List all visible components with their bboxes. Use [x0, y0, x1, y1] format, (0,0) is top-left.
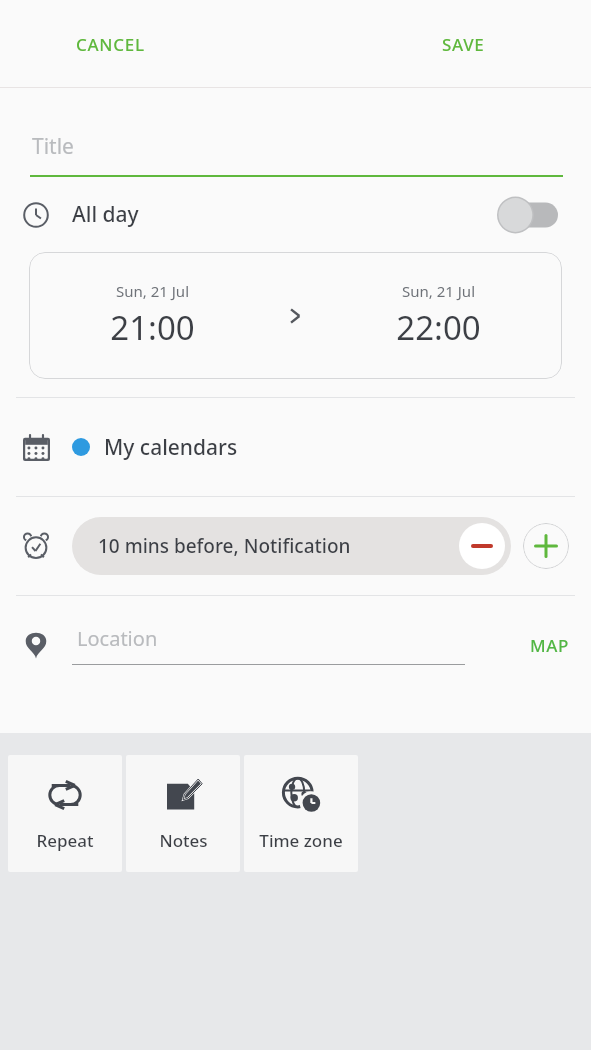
- staticText: Repeat: [36, 829, 94, 852]
- button[interactable]: Location: [72, 625, 465, 665]
- button[interactable]: All day: [0, 177, 591, 252]
- staticText: Title: [32, 132, 74, 161]
- staticText: Sun, 21 Jul: [402, 281, 475, 301]
- staticText: All day: [72, 200, 139, 229]
- staticText: Sun, 21 Jul: [116, 281, 189, 301]
- staticText: Notes: [159, 829, 208, 852]
- staticText: Location: [77, 625, 158, 652]
- button[interactable]: SAVE: [428, 25, 499, 64]
- button[interactable]: My calendars: [0, 398, 591, 496]
- staticText: MAP: [530, 634, 569, 657]
- button[interactable]: All day toggle: [496, 195, 558, 235]
- staticText: CANCEL: [76, 33, 145, 56]
- staticText: 10 mins before, Notification: [98, 533, 351, 559]
- button[interactable]: Remove reminder: [459, 523, 505, 569]
- staticText: My calendars: [104, 433, 238, 462]
- button[interactable]: MAP: [522, 628, 577, 663]
- button[interactable]: Sun, 21 Jul: [315, 252, 562, 379]
- staticText: 21:00: [110, 305, 195, 350]
- button[interactable]: CANCEL: [62, 25, 159, 64]
- button[interactable]: Notes: [126, 755, 240, 872]
- button[interactable]: Repeat: [8, 755, 122, 872]
- button[interactable]: Add reminder: [523, 523, 569, 569]
- button[interactable]: Title: [0, 88, 591, 177]
- button[interactable]: 10 mins before, Notification: [72, 517, 511, 575]
- button[interactable]: Sun, 21 Jul: [29, 252, 275, 379]
- staticText: SAVE: [442, 33, 485, 56]
- button[interactable]: Time zone: [244, 755, 358, 872]
- staticText: 22:00: [396, 305, 481, 350]
- staticText: Time zone: [259, 829, 343, 852]
